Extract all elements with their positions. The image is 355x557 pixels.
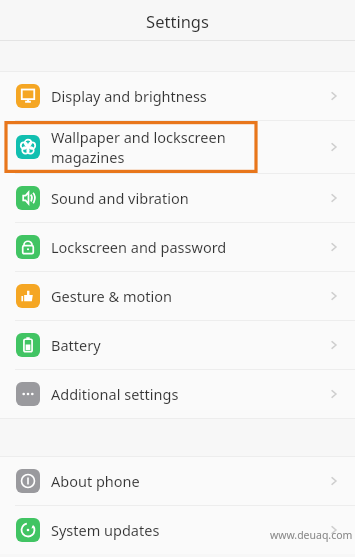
staticText: Display and brightness bbox=[51, 86, 207, 106]
staticText: Gesture & motion bbox=[51, 286, 172, 306]
staticText: Additional settings bbox=[51, 384, 179, 404]
button[interactable]: Display and brightness bbox=[0, 72, 355, 120]
staticText: About phone bbox=[51, 471, 140, 491]
button[interactable]: Wallpaper and lockscreen bbox=[0, 121, 355, 173]
button[interactable]: Lockscreen and password bbox=[0, 223, 355, 271]
staticText: Battery bbox=[51, 335, 101, 355]
staticText: magazines bbox=[51, 147, 125, 167]
button[interactable]: Battery bbox=[0, 321, 355, 369]
staticText: Wallpaper and lockscreen bbox=[51, 127, 226, 147]
button[interactable]: Gesture & motion bbox=[0, 272, 355, 320]
staticText: System updates bbox=[51, 520, 160, 540]
button[interactable]: System updates bbox=[0, 506, 355, 554]
staticText: www.deuaq.com bbox=[270, 528, 353, 542]
button[interactable]: Additional settings bbox=[0, 370, 355, 418]
staticText: Lockscreen and password bbox=[51, 237, 227, 257]
button[interactable]: About phone bbox=[0, 457, 355, 505]
button[interactable]: Sound and vibration bbox=[0, 174, 355, 222]
staticText: Settings bbox=[0, 10, 355, 32]
staticText: Sound and vibration bbox=[51, 188, 189, 208]
